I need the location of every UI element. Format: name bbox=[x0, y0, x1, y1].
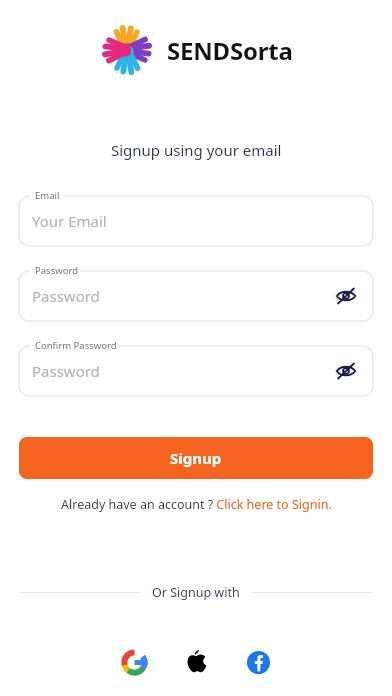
staticText: Password bbox=[35, 264, 78, 277]
button[interactable]: Sign up with Google bbox=[114, 642, 154, 682]
staticText: Password bbox=[32, 361, 100, 381]
button[interactable]: Your Email bbox=[19, 196, 373, 246]
button[interactable]: Sign up with Facebook bbox=[238, 642, 278, 682]
staticText: Signup bbox=[170, 448, 222, 468]
staticText: Email bbox=[35, 189, 60, 202]
staticText: Already have an account ? Click here to … bbox=[61, 496, 332, 513]
staticText: Your Email bbox=[32, 211, 107, 231]
button[interactable]: Password bbox=[19, 271, 373, 321]
button[interactable]: Signup bbox=[19, 437, 373, 479]
staticText: Confirm Password bbox=[35, 339, 117, 352]
staticText: Or Signup with bbox=[152, 584, 240, 601]
staticText: SENDSorta bbox=[167, 34, 293, 67]
staticText: Signup using your email bbox=[111, 140, 282, 160]
button[interactable]: Password bbox=[19, 346, 373, 396]
button[interactable]: Show password bbox=[333, 283, 359, 309]
button[interactable]: Show password bbox=[333, 358, 359, 384]
button[interactable]: Already have an account ? Click here to … bbox=[0, 496, 392, 513]
button[interactable]: Sign up with Apple bbox=[176, 642, 216, 682]
staticText: Password bbox=[32, 286, 100, 306]
